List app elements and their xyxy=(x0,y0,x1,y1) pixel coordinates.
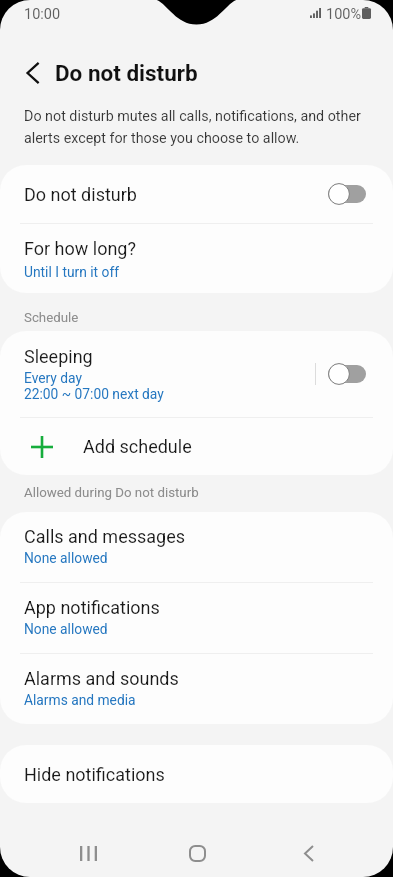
button[interactable]: Do not disturb xyxy=(0,165,393,223)
staticText: Alarms and sounds xyxy=(24,668,179,689)
staticText: Sleeping xyxy=(24,346,93,367)
staticText: Schedule xyxy=(24,310,393,326)
button[interactable]: Navigate up xyxy=(10,51,54,95)
staticText: 100% xyxy=(326,6,362,23)
staticText: Until I turn it off xyxy=(24,264,119,280)
button[interactable]: Home xyxy=(143,829,251,877)
button[interactable]: Toggle xyxy=(328,363,366,385)
button[interactable]: Hide notifications xyxy=(0,745,393,803)
staticText: App notifications xyxy=(24,597,160,618)
staticText: None allowed xyxy=(24,550,108,566)
staticText: For how long? xyxy=(24,238,136,259)
button[interactable]: Add schedule xyxy=(0,418,393,475)
staticText: Hide notifications xyxy=(24,764,165,785)
staticText: 10:00 xyxy=(24,6,61,23)
staticText: Do not disturb mutes all calls, notifica… xyxy=(24,108,377,146)
staticText: 22:00 ~ 07:00 next day xyxy=(24,386,164,402)
staticText: Do not disturb xyxy=(55,60,198,86)
staticText: Do not disturb xyxy=(24,184,137,205)
button[interactable]: Alarms and sounds xyxy=(0,654,393,724)
staticText: None allowed xyxy=(24,621,108,637)
staticText: Alarms and media xyxy=(24,692,136,708)
button[interactable]: Sleeping xyxy=(0,331,393,417)
button[interactable]: Calls and messages xyxy=(0,512,393,582)
staticText: Allowed during Do not disturb xyxy=(24,485,393,501)
staticText: Add schedule xyxy=(83,436,192,457)
button[interactable]: Back xyxy=(251,829,359,877)
button[interactable]: Toggle xyxy=(328,183,366,205)
staticText: Calls and messages xyxy=(24,526,186,547)
button[interactable]: App notifications xyxy=(0,583,393,653)
button[interactable]: For how long? xyxy=(0,224,393,293)
staticText: Every day xyxy=(24,370,83,386)
button[interactable]: Recent apps xyxy=(34,829,143,877)
